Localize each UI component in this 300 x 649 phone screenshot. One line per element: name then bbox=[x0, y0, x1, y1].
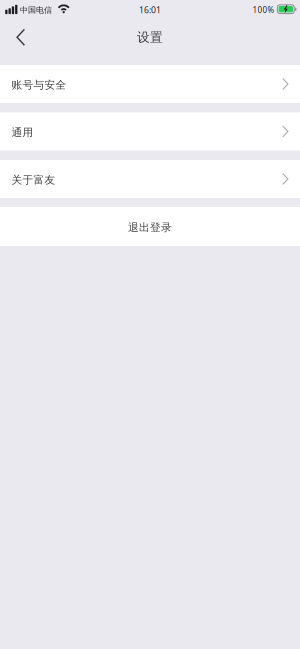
button[interactable]: 关于富友 bbox=[0, 160, 300, 198]
button[interactable]: 退出登录 bbox=[0, 207, 300, 246]
button[interactable]: 通用 bbox=[0, 112, 300, 150]
staticText: 设置 bbox=[137, 29, 163, 45]
staticText: 关于富友 bbox=[11, 173, 55, 187]
staticText: 退出登录 bbox=[128, 221, 172, 234]
staticText: 16:01 bbox=[139, 4, 161, 16]
button[interactable]: 账号与安全 bbox=[0, 65, 300, 103]
staticText: 中国电信 bbox=[20, 5, 52, 15]
staticText: 账号与安全 bbox=[11, 78, 66, 92]
staticText: 100% bbox=[252, 5, 274, 15]
staticText: 通用 bbox=[11, 126, 33, 139]
button[interactable]: Back bbox=[0, 20, 34, 51]
